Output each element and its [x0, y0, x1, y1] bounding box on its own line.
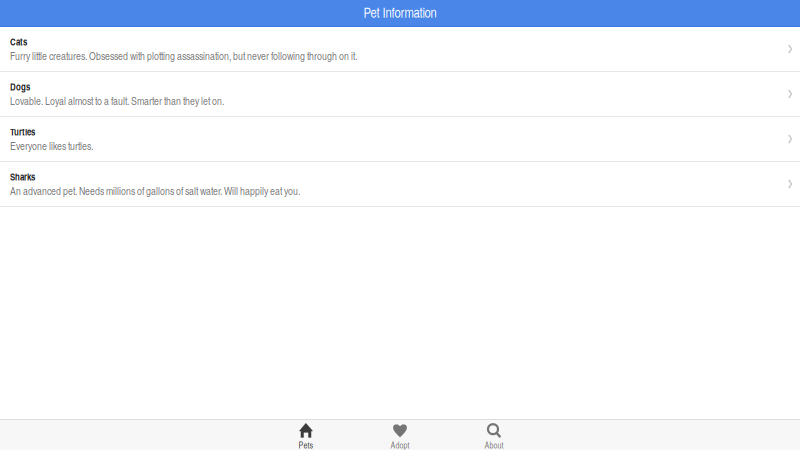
staticText: About — [484, 439, 503, 450]
button[interactable]: Sharks — [0, 162, 800, 207]
button[interactable]: Adopt — [365, 420, 435, 450]
button[interactable]: About — [459, 420, 529, 450]
staticText: Furry little creatures. Obsessed with pl… — [10, 48, 357, 63]
staticText: Adopt — [390, 439, 409, 450]
staticText: Lovable. Loyal almost to a fault. Smarte… — [10, 93, 224, 108]
staticText: Cats — [10, 35, 27, 48]
staticText: Pets — [298, 439, 313, 450]
staticText: Everyone likes turtles. — [10, 138, 93, 153]
staticText: Turtles — [10, 125, 35, 138]
staticText: Dogs — [10, 80, 30, 93]
button[interactable]: Cats — [0, 27, 800, 72]
staticText: Pet Information — [363, 3, 436, 22]
button[interactable]: Dogs — [0, 72, 800, 117]
button[interactable]: Turtles — [0, 117, 800, 162]
button[interactable]: Pets — [271, 420, 341, 450]
staticText: Sharks — [10, 170, 35, 183]
staticText: An advanced pet. Needs millions of gallo… — [10, 183, 300, 198]
